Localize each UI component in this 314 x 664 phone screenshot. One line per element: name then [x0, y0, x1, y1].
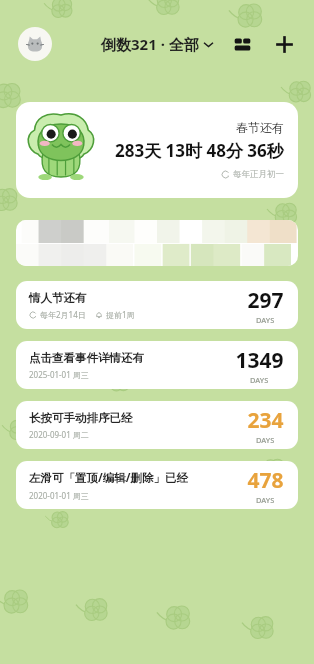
- staticText: 283天 13时 48分 36秒: [115, 139, 284, 162]
- button[interactable]: 情人节还有: [16, 281, 298, 329]
- staticText: 2020-01-01 周三: [29, 490, 89, 501]
- button[interactable]: 倒数321 · 全部: [101, 34, 213, 54]
- staticText: 倒数321 · 全部: [101, 34, 199, 54]
- staticText: 左滑可「置顶/编辑/删除」已经: [29, 470, 189, 486]
- staticText: 297: [247, 286, 284, 315]
- staticText: 478: [247, 466, 284, 495]
- button[interactable]: Profile: [18, 27, 52, 61]
- staticText: 每年正月初一: [233, 169, 284, 180]
- staticText: DAYS: [256, 435, 275, 445]
- button[interactable]: 春节还有: [16, 102, 298, 198]
- staticText: 1349: [235, 346, 284, 375]
- staticText: DAYS: [250, 375, 269, 385]
- button[interactable]: Layout: [226, 28, 258, 60]
- button[interactable]: Add: [268, 28, 300, 60]
- staticText: 2025-01-01 周三: [29, 369, 89, 380]
- staticText: 每年2月14日: [40, 309, 86, 320]
- staticText: 春节还有: [236, 120, 284, 135]
- staticText: DAYS: [256, 315, 275, 325]
- staticText: DAYS: [256, 495, 275, 505]
- staticText: 提前1周: [106, 309, 135, 320]
- button[interactable]: 长按可手动排序已经: [16, 401, 298, 449]
- staticText: 长按可手动排序已经: [29, 411, 133, 425]
- button[interactable]: [16, 220, 298, 266]
- staticText: 点击查看事件详情还有: [29, 351, 144, 365]
- staticText: 情人节还有: [29, 291, 87, 305]
- button[interactable]: 左滑可「置顶/编辑/删除」已经: [16, 461, 298, 509]
- staticText: 2020-09-01 周二: [29, 429, 89, 440]
- button[interactable]: 点击查看事件详情还有: [16, 341, 298, 389]
- staticText: 234: [247, 406, 284, 435]
